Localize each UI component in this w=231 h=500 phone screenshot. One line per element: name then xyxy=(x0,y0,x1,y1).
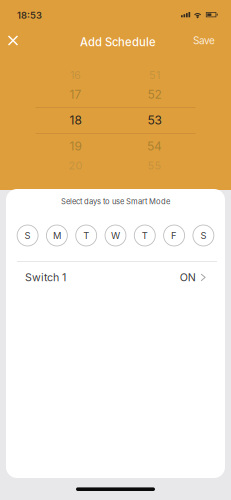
button[interactable]: T xyxy=(134,225,155,246)
staticText: S xyxy=(200,230,206,241)
button[interactable]: S xyxy=(17,225,38,246)
button[interactable]: Switch 1 xyxy=(6,262,225,293)
staticText: T xyxy=(83,230,89,241)
button[interactable]: W xyxy=(105,225,126,246)
staticText: 19 xyxy=(69,139,81,153)
button[interactable]: F xyxy=(164,225,185,246)
button[interactable]: Save xyxy=(188,29,220,51)
button[interactable]: T xyxy=(76,225,97,246)
staticText: Select days to use Smart Mode xyxy=(61,197,170,206)
staticText: Add Schedule xyxy=(80,35,156,49)
staticText: ON xyxy=(180,271,196,284)
staticText: 18 xyxy=(69,113,81,127)
staticText: S xyxy=(25,230,31,241)
button[interactable]: S xyxy=(193,225,214,246)
staticText: Save xyxy=(193,34,215,47)
staticText: Switch 1 xyxy=(25,271,66,284)
staticText: 55 xyxy=(147,159,161,172)
staticText: M xyxy=(53,230,61,241)
staticText: 17 xyxy=(69,87,81,102)
button[interactable]: M xyxy=(46,225,67,246)
staticText: 51 xyxy=(149,68,160,82)
staticText: T xyxy=(142,230,148,241)
staticText: F xyxy=(171,230,177,241)
staticText: 53 xyxy=(147,113,161,127)
staticText: 18:53 xyxy=(17,10,42,21)
staticText: 52 xyxy=(147,87,161,102)
staticText: 20 xyxy=(68,159,82,172)
staticText: W xyxy=(111,230,120,241)
button[interactable]: Close xyxy=(0,27,28,53)
staticText: 16 xyxy=(70,68,81,82)
staticText: 54 xyxy=(147,139,162,153)
